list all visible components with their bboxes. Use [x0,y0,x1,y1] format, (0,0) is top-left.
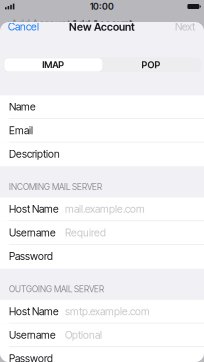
staticText: INCOMING MAIL SERVER [9,182,102,192]
button[interactable]: Password [0,347,204,362]
button[interactable]: Name [0,95,204,119]
staticText: Optional [65,329,102,341]
button[interactable]: Host Name [0,198,204,221]
staticText: Cancel [8,20,39,33]
staticText: smtp.example.com [65,305,150,318]
staticText: Password [9,250,53,263]
button[interactable]: Description [0,142,204,166]
staticText: Next [175,20,195,33]
button[interactable]: POP [102,58,200,71]
staticText: Username [9,226,56,239]
staticText: Password [9,352,53,362]
staticText: Username [9,329,56,341]
button[interactable]: Email [0,119,204,142]
button[interactable]: Password [0,245,204,268]
staticText: mail.example.com [65,203,145,215]
staticText: POP [142,59,161,70]
button[interactable]: Next [175,16,204,37]
staticText: Add Account [71,17,133,30]
staticText: Host Name [9,203,59,215]
button[interactable]: Host Name [0,300,204,323]
button[interactable]: Username [0,323,204,347]
staticText: Required [65,226,106,239]
button[interactable]: Cancel [0,16,39,37]
staticText: Email [9,124,33,137]
staticText: OUTGOING MAIL SERVER [9,284,104,294]
staticText: Description [9,148,60,160]
staticText: ‹ Add Account [6,17,70,30]
staticText: New Account [69,20,135,33]
staticText: 10:00 [90,1,114,12]
staticText: Host Name [9,305,59,318]
staticText: IMAP [42,59,64,70]
staticText: Name [9,100,36,113]
button[interactable]: Username [0,221,204,245]
button[interactable]: IMAP [4,58,102,71]
